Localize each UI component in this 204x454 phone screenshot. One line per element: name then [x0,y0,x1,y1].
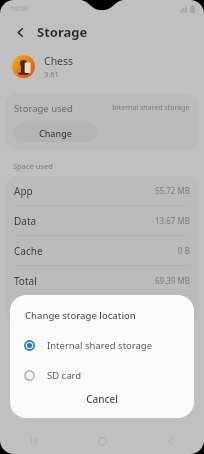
staticText: Storage used [14,102,73,115]
staticText: App [14,184,33,198]
staticText: Cancel [86,392,118,406]
staticText: 0 B [178,245,190,256]
button[interactable]: Clear data [5,296,199,325]
staticText: 3.61 [44,69,59,79]
button[interactable]: Back [10,22,30,42]
button[interactable]: Chess [0,47,204,85]
button[interactable]: Cancel [68,386,136,412]
button[interactable]: Cache [5,236,199,266]
button[interactable]: Back [136,428,204,454]
staticText: 69.39 MB [155,275,190,286]
button[interactable]: SD card [10,364,194,386]
staticText: Change storage location [25,309,136,322]
staticText: Total [14,274,37,288]
staticText: Space used [13,161,53,171]
button[interactable]: Change [13,123,97,142]
button[interactable]: App [5,176,199,206]
staticText: Change [39,127,72,139]
staticText: Internal shared storage [47,339,153,352]
staticText: Cache [14,244,43,258]
staticText: 13.67 MB [155,215,190,226]
staticText: Storage [37,23,88,41]
staticText: Chess [44,54,74,68]
staticText: Clear data [14,304,62,318]
button[interactable]: Internal shared storage [10,334,194,356]
staticText: Internal shared storage [112,103,190,113]
staticText: 10:00 [10,4,28,14]
staticText: 55.72 MB [155,185,190,196]
button[interactable]: Total [5,266,199,296]
button[interactable]: Data [5,206,199,236]
button[interactable]: Recents [0,428,68,454]
staticText: SD card [47,369,82,382]
staticText: Data [14,214,37,228]
